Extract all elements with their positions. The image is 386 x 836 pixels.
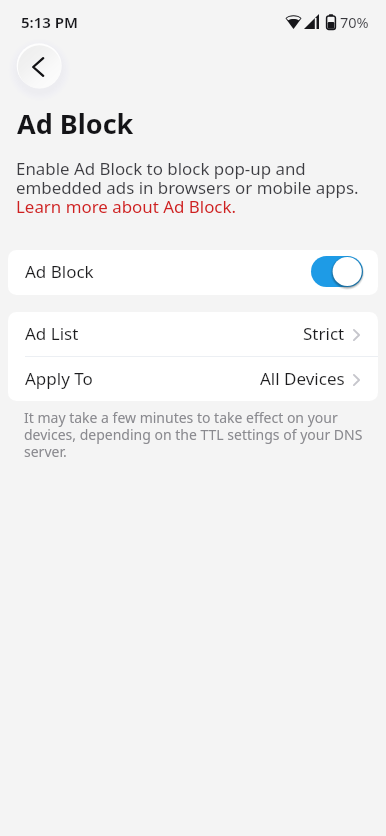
- staticText: It may take a few minutes to take effect…: [24, 408, 370, 461]
- staticText: 70%: [340, 12, 369, 32]
- staticText: Ad Block: [25, 260, 94, 283]
- staticText: Strict: [303, 322, 345, 345]
- staticText: All Devices: [260, 367, 345, 390]
- button[interactable]: Back: [11, 38, 68, 95]
- button[interactable]: Enable Ad Block to block pop-up and embe…: [16, 157, 364, 218]
- button[interactable]: Ad Block toggle: [311, 254, 367, 291]
- other: Battery: [326, 14, 336, 30]
- button[interactable]: Apply To: [8, 357, 378, 401]
- staticText: 5:13 PM: [21, 12, 78, 32]
- other: Cellular signal: [304, 14, 319, 29]
- staticText: Ad List: [25, 322, 79, 345]
- other: Wi-Fi: [285, 14, 302, 29]
- staticText: Apply To: [25, 367, 93, 390]
- button[interactable]: Ad Block: [8, 250, 378, 295]
- button[interactable]: Ad List: [8, 312, 378, 356]
- staticText: Ad Block: [17, 105, 134, 142]
